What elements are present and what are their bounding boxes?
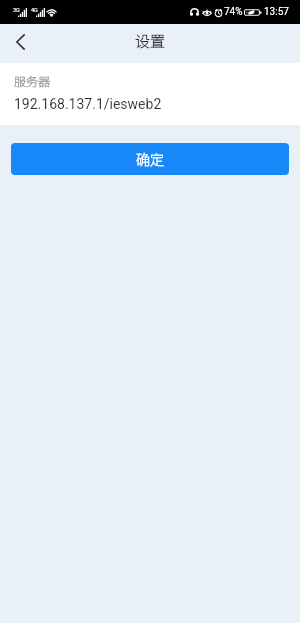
staticText: 4G [31, 7, 38, 13]
staticText: 3G [13, 7, 20, 13]
staticText: 服务器 [14, 72, 51, 89]
staticText: 确定 [136, 149, 164, 169]
button[interactable]: Back [0, 24, 40, 63]
staticText: 设置 [135, 30, 166, 52]
staticText: 74% [224, 6, 243, 18]
button[interactable]: 服务器 [0, 63, 300, 125]
staticText: 192.168.137.1/iesweb2 [14, 96, 162, 112]
button[interactable]: 确定 [11, 143, 289, 175]
staticText: 13:57 [264, 6, 289, 18]
